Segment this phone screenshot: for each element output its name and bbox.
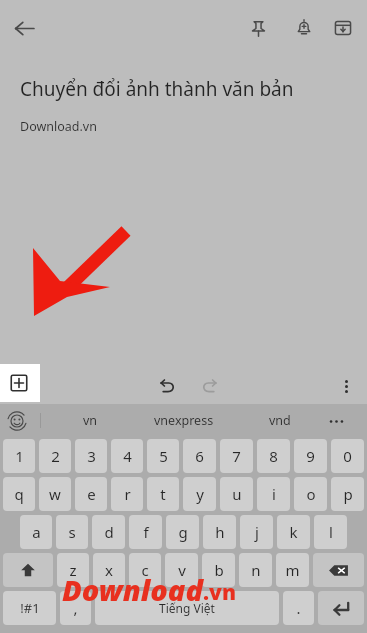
staticText: Download.vn	[20, 118, 97, 135]
staticText: 0	[343, 446, 352, 466]
button[interactable]: v	[165, 553, 198, 587]
button[interactable]: More suggestions	[324, 409, 348, 433]
button[interactable]: More options	[328, 368, 364, 404]
button[interactable]: c	[129, 553, 161, 587]
button[interactable]: w	[39, 477, 71, 511]
staticText: 7	[232, 446, 241, 466]
staticText: .	[296, 598, 301, 618]
button[interactable]: !#1	[3, 591, 56, 625]
staticText: ,	[73, 598, 78, 618]
staticText: n	[251, 560, 261, 580]
button[interactable]: r	[111, 477, 143, 511]
staticText: !#1	[20, 599, 40, 617]
button[interactable]: 2	[39, 439, 71, 473]
button[interactable]: Pin	[240, 10, 276, 46]
staticText: i	[272, 484, 276, 504]
button[interactable]: y	[183, 477, 216, 511]
button[interactable]: s	[56, 515, 88, 549]
staticText: a	[32, 522, 41, 542]
staticText: v	[178, 560, 186, 580]
staticText: d	[104, 522, 114, 542]
staticText: m	[285, 560, 300, 580]
staticText: c	[141, 560, 149, 580]
button[interactable]: Tiếng Việt	[95, 591, 279, 625]
button[interactable]: g	[166, 515, 199, 549]
button[interactable]: Shift	[3, 553, 53, 587]
button[interactable]: i	[257, 477, 290, 511]
staticText: q	[14, 484, 24, 504]
button[interactable]: q	[3, 477, 35, 511]
staticText: Tiếng Việt	[159, 600, 215, 616]
staticText: 9	[306, 446, 315, 466]
button[interactable]: z	[57, 553, 89, 587]
button[interactable]: Redo	[193, 368, 229, 404]
staticText: p	[343, 484, 353, 504]
button[interactable]: Back	[6, 10, 42, 46]
button[interactable]: Add	[5, 369, 33, 397]
button[interactable]: 4	[111, 439, 143, 473]
button[interactable]: 0	[331, 439, 364, 473]
button[interactable]: m	[276, 553, 309, 587]
staticText: x	[105, 560, 113, 580]
staticText: t	[160, 484, 166, 504]
button[interactable]: Archive	[325, 10, 361, 46]
button[interactable]: h	[203, 515, 236, 549]
staticText: k	[289, 522, 298, 542]
staticText: 1	[15, 446, 24, 466]
button[interactable]: 6	[183, 439, 216, 473]
button[interactable]: o	[294, 477, 327, 511]
staticText: vn	[83, 412, 98, 429]
button[interactable]: b	[202, 553, 235, 587]
button[interactable]: Backspace	[313, 553, 364, 587]
button[interactable]: f	[129, 515, 162, 549]
staticText: f	[143, 522, 149, 542]
staticText: y	[196, 484, 204, 504]
button[interactable]: 5	[147, 439, 179, 473]
staticText: s	[68, 522, 76, 542]
button[interactable]: Reminder	[286, 10, 322, 46]
button[interactable]: 3	[75, 439, 107, 473]
staticText: b	[214, 560, 224, 580]
button[interactable]: t	[147, 477, 179, 511]
staticText: 5	[159, 446, 168, 466]
button[interactable]: 1	[3, 439, 35, 473]
staticText: 4	[123, 446, 132, 466]
button[interactable]: 9	[294, 439, 327, 473]
button[interactable]: 8	[257, 439, 290, 473]
staticText: g	[178, 522, 188, 542]
button[interactable]: l	[314, 515, 347, 549]
staticText: e	[87, 484, 96, 504]
button[interactable]: u	[220, 477, 253, 511]
button[interactable]: k	[277, 515, 310, 549]
button[interactable]: .	[283, 591, 314, 625]
staticText: 6	[195, 446, 204, 466]
staticText: 2	[51, 446, 60, 466]
staticText: z	[69, 560, 77, 580]
button[interactable]: e	[75, 477, 107, 511]
button[interactable]: a	[20, 515, 52, 549]
staticText: u	[232, 484, 242, 504]
button[interactable]: Undo	[148, 368, 184, 404]
button[interactable]: j	[240, 515, 273, 549]
button[interactable]: Enter	[318, 591, 364, 625]
staticText: r	[124, 484, 131, 504]
button[interactable]: n	[239, 553, 272, 587]
button[interactable]: vnexpress	[138, 404, 230, 437]
button[interactable]: d	[92, 515, 125, 549]
staticText: l	[329, 522, 333, 542]
staticText: Download	[62, 570, 203, 609]
button[interactable]: Emoji	[6, 410, 28, 432]
staticText: .vn	[203, 578, 236, 607]
staticText: 8	[269, 446, 278, 466]
staticText: vnexpress	[154, 412, 214, 429]
staticText: Chuyển đổi ảnh thành văn bản	[20, 76, 294, 102]
staticText: vnd	[269, 412, 291, 429]
staticText: j	[255, 522, 259, 542]
button[interactable]: x	[93, 553, 125, 587]
button[interactable]: vn	[50, 404, 130, 437]
staticText: o	[306, 484, 316, 504]
button[interactable]: ,	[60, 591, 91, 625]
button[interactable]: vnd	[246, 404, 314, 437]
button[interactable]: 7	[220, 439, 253, 473]
button[interactable]: p	[331, 477, 364, 511]
